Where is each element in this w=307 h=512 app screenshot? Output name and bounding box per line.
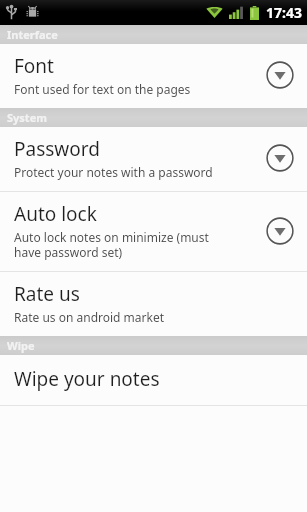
staticText: Interface bbox=[7, 27, 58, 42]
staticText: Font used for text on the pages bbox=[14, 81, 191, 97]
button[interactable]: Font bbox=[0, 44, 307, 108]
staticText: Font bbox=[14, 53, 54, 79]
staticText: Rate us bbox=[14, 281, 80, 307]
staticText: Protect your notes with a password bbox=[14, 164, 213, 180]
button[interactable]: Expand options bbox=[265, 60, 295, 90]
button[interactable]: Expand options bbox=[265, 216, 295, 246]
staticText: Password bbox=[14, 136, 100, 162]
staticText: Wipe bbox=[7, 338, 35, 353]
button[interactable]: Wipe your notes bbox=[0, 355, 307, 405]
staticText: Auto lock bbox=[14, 201, 97, 227]
staticText: 17:43 bbox=[266, 3, 302, 22]
staticText: System bbox=[7, 110, 47, 125]
staticText: Auto lock notes on minimize (must have p… bbox=[14, 229, 209, 260]
button[interactable]: Expand options bbox=[265, 143, 295, 173]
staticText: Rate us on android market bbox=[14, 309, 165, 325]
button[interactable]: Rate us bbox=[0, 272, 307, 336]
staticText: Wipe your notes bbox=[14, 366, 160, 392]
button[interactable]: Auto lock bbox=[0, 192, 307, 271]
button[interactable]: Password bbox=[0, 127, 307, 191]
